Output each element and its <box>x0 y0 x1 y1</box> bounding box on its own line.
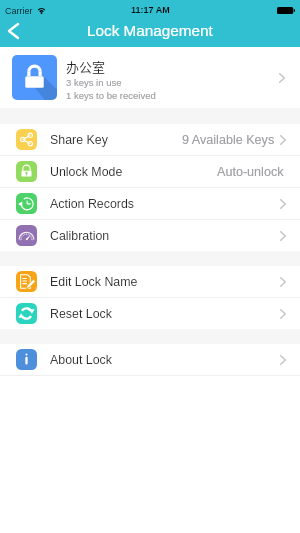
button[interactable]: Reset Lock <box>0 298 300 329</box>
staticText: Action Records <box>50 197 135 211</box>
button[interactable]: Calibration <box>0 220 300 251</box>
staticText: Share Key <box>50 133 108 147</box>
button[interactable]: Unlock Mode <box>0 156 300 187</box>
staticText: Auto-unlock <box>217 165 284 179</box>
staticText: About Lock <box>50 353 112 367</box>
button[interactable]: Back <box>0 20 30 47</box>
staticText: Calibration <box>50 229 110 243</box>
button[interactable]: Edit Lock Name <box>0 266 300 297</box>
button[interactable]: About Lock <box>0 344 300 375</box>
staticText: 9 Available Keys <box>182 133 275 147</box>
staticText: 1 keys to be received <box>66 90 156 101</box>
staticText: 3 keys in use <box>66 77 122 88</box>
button[interactable]: 办公室 <box>0 47 300 108</box>
staticText: Lock Management <box>87 22 213 39</box>
staticText: 办公室 <box>66 57 106 76</box>
staticText: Reset Lock <box>50 307 112 321</box>
staticText: Carrier <box>5 6 33 16</box>
staticText: Edit Lock Name <box>50 275 138 289</box>
staticText: 11:17 AM <box>131 5 170 15</box>
button[interactable]: Share Key <box>0 124 300 155</box>
button[interactable]: Action Records <box>0 188 300 219</box>
staticText: Unlock Mode <box>50 165 123 179</box>
